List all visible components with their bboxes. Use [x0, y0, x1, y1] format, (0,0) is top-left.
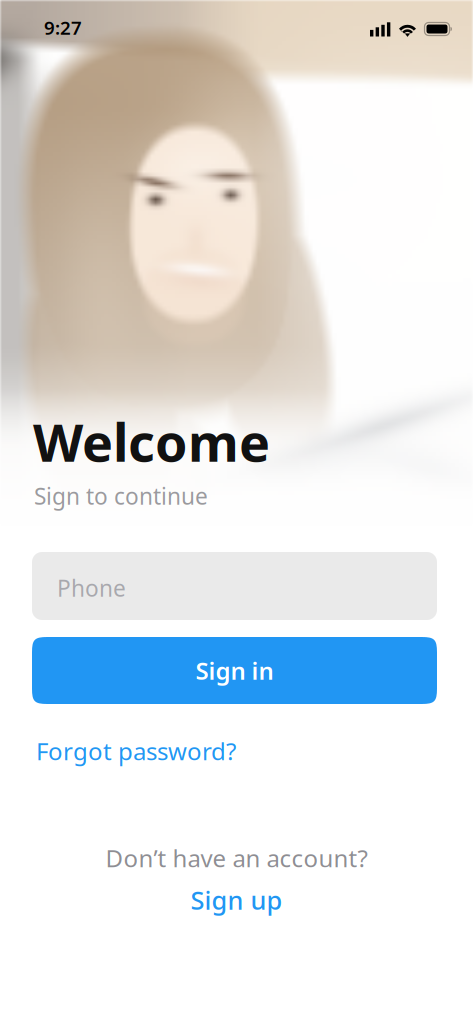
staticText: Sign up	[190, 883, 282, 917]
image	[0, 0, 473, 560]
button[interactable]: Phone	[32, 552, 437, 620]
staticText: Phone	[57, 573, 126, 603]
staticText: 9:27	[44, 15, 82, 40]
button[interactable]: Sign up	[180, 877, 292, 923]
button[interactable]: Forgot password?	[30, 727, 242, 775]
staticText: Forgot password?	[36, 735, 236, 767]
staticText: Don’t have an account?	[105, 842, 367, 874]
staticText: Sign to continue	[34, 481, 208, 511]
button[interactable]: Sign in	[32, 637, 437, 704]
staticText: Welcome	[33, 407, 270, 476]
staticText: Sign in	[195, 655, 273, 686]
